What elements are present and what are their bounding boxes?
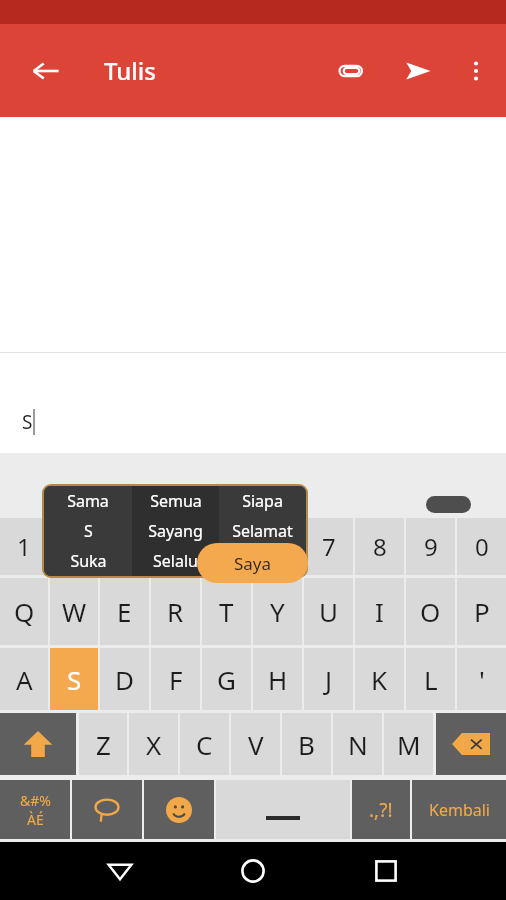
staticText: C [196,727,213,762]
button[interactable]: Kembali [412,780,506,839]
staticText: N [348,727,368,762]
button[interactable]: Saya [197,543,308,583]
staticText: .,?! [369,797,393,823]
button[interactable]: &#% [0,780,70,839]
button[interactable]: C [180,713,229,775]
button[interactable]: J [304,648,353,710]
staticText: S [22,409,33,435]
button[interactable]: P [457,578,506,645]
button[interactable] [219,546,306,576]
staticText: J [325,662,333,697]
button[interactable]: 9 [406,518,455,575]
staticText: Y [270,594,285,629]
button[interactable]: 7 [304,518,353,575]
button[interactable]: N [333,713,382,775]
button[interactable]: Home [225,843,281,899]
button[interactable]: E [100,578,149,645]
button[interactable]: 0 [457,518,506,575]
staticText: O [420,594,441,629]
button[interactable]: B [282,713,331,775]
button[interactable]: 6 [253,518,302,575]
staticText: T [219,594,234,629]
button[interactable]: Attach [327,47,375,95]
button[interactable]: 3 [100,518,149,575]
staticText: M [397,727,421,762]
button[interactable]: Z [79,713,127,775]
button[interactable]: Selalu [132,546,219,576]
button[interactable]: G [202,648,251,710]
button[interactable]: Emoji [144,780,214,839]
button[interactable]: V [231,713,280,775]
staticText: Suka [70,550,107,572]
button[interactable]: Back [92,843,148,899]
staticText: 8 [373,530,387,563]
button[interactable]: S [50,648,98,710]
button[interactable]: Semua [132,486,219,516]
staticText: ' [479,662,485,697]
button[interactable]: Sayang [132,516,219,546]
staticText: P [474,594,490,629]
button[interactable]: S [44,516,132,546]
staticText: ÀÉ [27,810,44,829]
button[interactable]: Shift [0,713,76,775]
staticText: Z [96,727,111,762]
button[interactable]: M [384,713,433,775]
staticText: &#% [20,791,51,810]
staticText: S [84,520,93,542]
staticText: I [375,594,384,629]
button[interactable]: S [0,353,506,453]
staticText: Saya [234,552,272,575]
staticText: 9 [424,530,438,563]
button[interactable]: Sama [44,486,132,516]
staticText: 4 [169,530,183,563]
staticText: U [319,594,339,629]
button[interactable]: F [151,648,200,710]
button[interactable]: Suka [44,546,132,576]
button[interactable]: Back [22,47,70,95]
button[interactable]: More options [452,47,500,95]
button[interactable]: H [253,648,302,710]
button[interactable]: Recents [358,843,414,899]
button[interactable]: K [355,648,404,710]
staticText: 7 [322,530,336,563]
button[interactable]: Selamat [219,516,306,546]
button[interactable]: A [0,648,48,710]
staticText: Tulis [104,54,156,87]
button[interactable]: Voice or chat [72,780,142,839]
staticText: S [67,662,82,697]
staticText: R [167,594,184,629]
button[interactable]: W [50,578,98,645]
button[interactable]: D [100,648,149,710]
button[interactable]: .,?! [352,780,410,839]
staticText: B [298,727,315,762]
button[interactable]: Backspace [436,713,506,775]
button[interactable]: ' [457,648,506,710]
button[interactable]: Siapa [219,486,306,516]
button[interactable]: Send [394,47,442,95]
button[interactable]: T [202,578,251,645]
button[interactable]: 1 [0,518,48,575]
button[interactable]: R [151,578,200,645]
staticText: G [217,662,236,697]
button[interactable]: 8 [355,518,404,575]
button[interactable]: L [406,648,455,710]
button[interactable]: Y [253,578,302,645]
button[interactable]: X [129,713,178,775]
button[interactable]: O [406,578,455,645]
staticText: Siapa [242,490,283,512]
button[interactable]: 2 [50,518,98,575]
button[interactable]: Q [0,578,48,645]
staticText: Sama [67,490,109,512]
button[interactable]: 5 [202,518,251,575]
staticText: D [115,662,134,697]
button[interactable]: Space [216,780,350,839]
staticText: 2 [67,530,81,563]
button[interactable]: Resize keyboard [426,496,471,513]
staticText: Selalu [153,550,198,572]
staticText: 5 [220,530,234,563]
button[interactable]: I [355,578,404,645]
staticText: Kembali [429,799,490,821]
button[interactable]: U [304,578,353,645]
button[interactable]: 4 [151,518,200,575]
